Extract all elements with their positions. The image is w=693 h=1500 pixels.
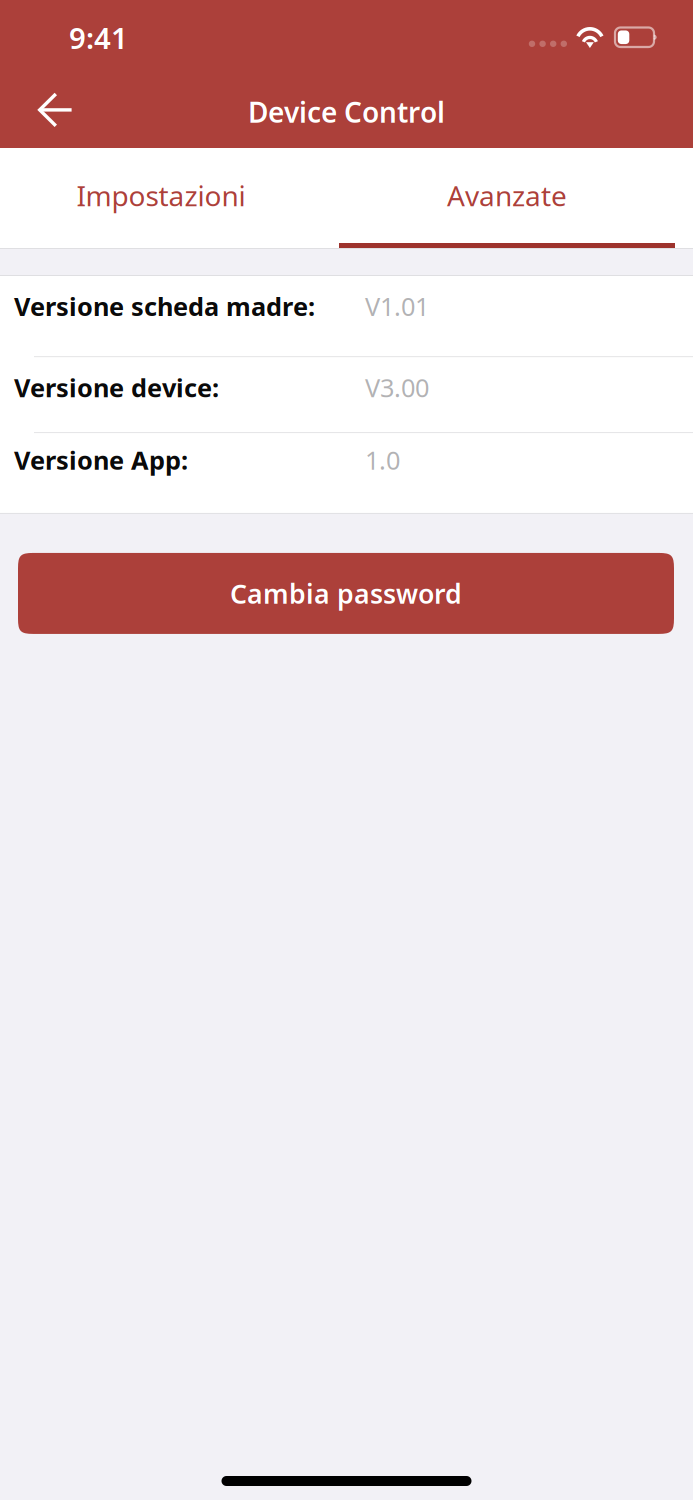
staticText: Device Control bbox=[248, 93, 445, 131]
staticText: Versione device: bbox=[14, 371, 219, 404]
staticText: Avanzate bbox=[447, 177, 567, 214]
staticText: V3.00 bbox=[365, 371, 429, 404]
staticText: Impostazioni bbox=[76, 177, 245, 214]
button[interactable]: Cambia password bbox=[18, 553, 674, 634]
staticText: Versione App: bbox=[14, 443, 188, 477]
staticText: 9:41 bbox=[69, 18, 128, 57]
staticText: V1.01 bbox=[365, 289, 429, 323]
staticText: 1.0 bbox=[365, 443, 400, 477]
button[interactable]: Avanzate bbox=[334, 148, 680, 248]
staticText: Versione scheda madre: bbox=[14, 289, 315, 323]
button[interactable]: Back bbox=[0, 81, 92, 142]
button[interactable]: Impostazioni bbox=[0, 148, 334, 248]
staticText: Cambia password bbox=[230, 576, 462, 611]
